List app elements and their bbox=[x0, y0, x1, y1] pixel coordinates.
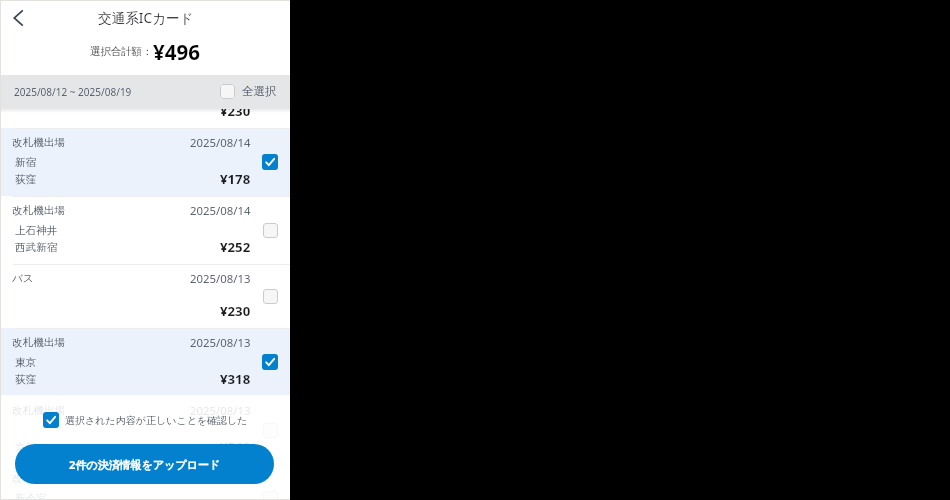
staticText: 交通系ICカード bbox=[98, 8, 194, 27]
staticText: 2025/08/13 bbox=[190, 403, 251, 419]
staticText: 上石神井 bbox=[15, 224, 58, 237]
button[interactable]: 改札機出場 bbox=[1, 464, 290, 499]
staticText: ¥252 bbox=[220, 238, 251, 256]
button[interactable]: Selected bbox=[262, 354, 278, 370]
button[interactable]: 改札機出場 bbox=[1, 196, 290, 264]
button[interactable]: Not selected bbox=[263, 289, 278, 304]
staticText: ¥496 bbox=[153, 38, 200, 66]
staticText: 新宿 bbox=[15, 156, 37, 169]
staticText: 2件の決済情報をアップロード bbox=[69, 457, 221, 472]
button[interactable]: 全選択 bbox=[220, 84, 277, 99]
button[interactable]: Selected bbox=[262, 154, 278, 170]
staticText: 2025/08/12 bbox=[190, 471, 251, 487]
staticText: ¥230 bbox=[220, 302, 251, 320]
staticText: 改札機出場 bbox=[12, 472, 65, 485]
button[interactable]: 選択された内容が正しいことを確認した bbox=[43, 412, 248, 428]
staticText: 東京 bbox=[15, 356, 37, 369]
staticText: 西武新宿 bbox=[15, 241, 58, 254]
staticText: ¥230 bbox=[220, 109, 251, 120]
staticText: ¥318 bbox=[220, 370, 251, 388]
staticText: 2025/08/12 ~ 2025/08/19 bbox=[14, 85, 132, 99]
staticText: バス bbox=[12, 272, 34, 285]
staticText: ¥178 bbox=[220, 170, 251, 188]
staticText: 荻窪 bbox=[15, 373, 37, 386]
staticText: 改札機出場 bbox=[12, 404, 65, 417]
staticText: 新今宮 bbox=[15, 492, 47, 499]
button[interactable]: Back bbox=[4, 4, 32, 32]
staticText: 荻窪 bbox=[15, 173, 37, 186]
staticText: 全選択 bbox=[242, 84, 277, 98]
button[interactable]: 改札機出場 bbox=[1, 128, 290, 196]
staticText: 改札機出場 bbox=[12, 336, 65, 349]
staticText: 京都 bbox=[15, 441, 37, 454]
staticText: 選択合計額： bbox=[90, 45, 153, 58]
staticText: 2025/08/13 bbox=[190, 271, 251, 287]
staticText: 改札機出場 bbox=[12, 204, 65, 217]
staticText: 2025/08/13 bbox=[190, 335, 251, 351]
staticText: 2025/08/14 bbox=[190, 135, 251, 151]
staticText: 改札機出場 bbox=[12, 136, 65, 149]
button[interactable]: 改札機出場 bbox=[1, 328, 290, 396]
staticText: 2025/08/14 bbox=[190, 203, 251, 219]
button[interactable]: Not selected bbox=[263, 223, 278, 238]
button[interactable]: 改札機出場 bbox=[1, 396, 290, 464]
staticText: ¥560 bbox=[220, 438, 251, 456]
button[interactable]: 改札機出場 bbox=[1, 109, 290, 128]
button[interactable]: 2件の決済情報をアップロード bbox=[15, 444, 274, 484]
button[interactable]: バス bbox=[1, 264, 290, 328]
staticText: 選択された内容が正しいことを確認した bbox=[65, 414, 248, 427]
